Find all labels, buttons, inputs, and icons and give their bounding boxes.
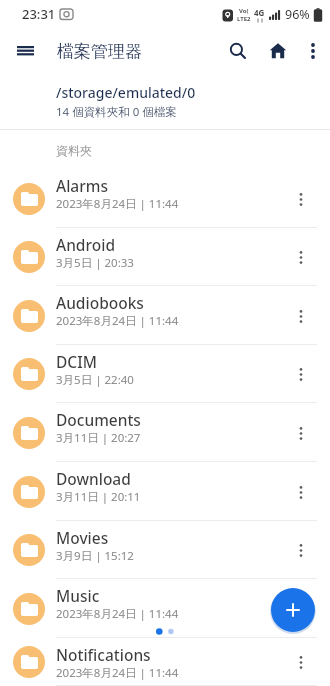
staticText: Music bbox=[56, 585, 100, 606]
staticText: Documents bbox=[56, 409, 141, 430]
staticText: Vo( bbox=[239, 7, 249, 15]
staticText: 2023年8月24日 | 11:44 bbox=[56, 313, 179, 329]
staticText: 14 個資料夾和 0 個檔案 bbox=[56, 104, 177, 120]
button[interactable] bbox=[286, 477, 316, 507]
button[interactable] bbox=[271, 588, 315, 632]
staticText: 23:31 bbox=[22, 5, 56, 23]
staticText: Download bbox=[56, 468, 131, 489]
button[interactable] bbox=[286, 242, 316, 272]
staticText: LTE2 bbox=[237, 15, 251, 23]
button[interactable] bbox=[286, 301, 316, 331]
staticText: 檔案管理器 bbox=[57, 41, 142, 62]
staticText: 資料夾 bbox=[56, 143, 92, 158]
button[interactable] bbox=[286, 418, 316, 448]
staticText: Alarms bbox=[56, 175, 108, 196]
staticText: /storage/emulated/0 bbox=[56, 83, 196, 102]
staticText: 2023年8月24日 | 11:44 bbox=[56, 606, 179, 622]
staticText: 3月11日 | 20:11 bbox=[56, 489, 141, 505]
button[interactable] bbox=[286, 359, 316, 389]
button[interactable] bbox=[218, 31, 258, 71]
staticText: Android bbox=[56, 234, 115, 255]
button[interactable] bbox=[8, 34, 42, 68]
button[interactable] bbox=[298, 31, 327, 71]
button[interactable] bbox=[286, 647, 316, 677]
staticText: 96% bbox=[285, 6, 310, 23]
button[interactable] bbox=[286, 594, 316, 624]
staticText: Movies bbox=[56, 527, 109, 548]
button[interactable]: Android bbox=[0, 228, 330, 286]
staticText: Audiobooks bbox=[56, 292, 144, 313]
staticText: 2023年8月24日 | 11:44 bbox=[56, 196, 179, 212]
staticText: 3月9日 | 15:12 bbox=[56, 548, 134, 564]
button[interactable] bbox=[286, 184, 316, 214]
staticText: DCIM bbox=[56, 351, 97, 372]
button[interactable]: Download bbox=[0, 462, 330, 521]
button[interactable]: Notifications bbox=[0, 638, 330, 686]
button[interactable]: Alarms bbox=[0, 169, 330, 228]
button[interactable]: DCIM bbox=[0, 345, 330, 403]
button[interactable] bbox=[286, 535, 316, 565]
staticText: Notifications bbox=[56, 644, 151, 665]
button[interactable]: Documents bbox=[0, 403, 330, 462]
staticText: 3月5日 | 20:33 bbox=[56, 255, 134, 271]
button[interactable]: Music bbox=[0, 579, 330, 638]
staticText: 3月5日 | 22:40 bbox=[56, 372, 134, 388]
button[interactable] bbox=[258, 31, 298, 71]
button[interactable]: Audiobooks bbox=[0, 286, 330, 345]
button[interactable]: Movies bbox=[0, 521, 330, 579]
staticText: 2023年8月24日 | 11:44 bbox=[56, 665, 179, 681]
staticText: 4G bbox=[254, 7, 265, 18]
staticText: 3月11日 | 20:27 bbox=[56, 430, 141, 446]
